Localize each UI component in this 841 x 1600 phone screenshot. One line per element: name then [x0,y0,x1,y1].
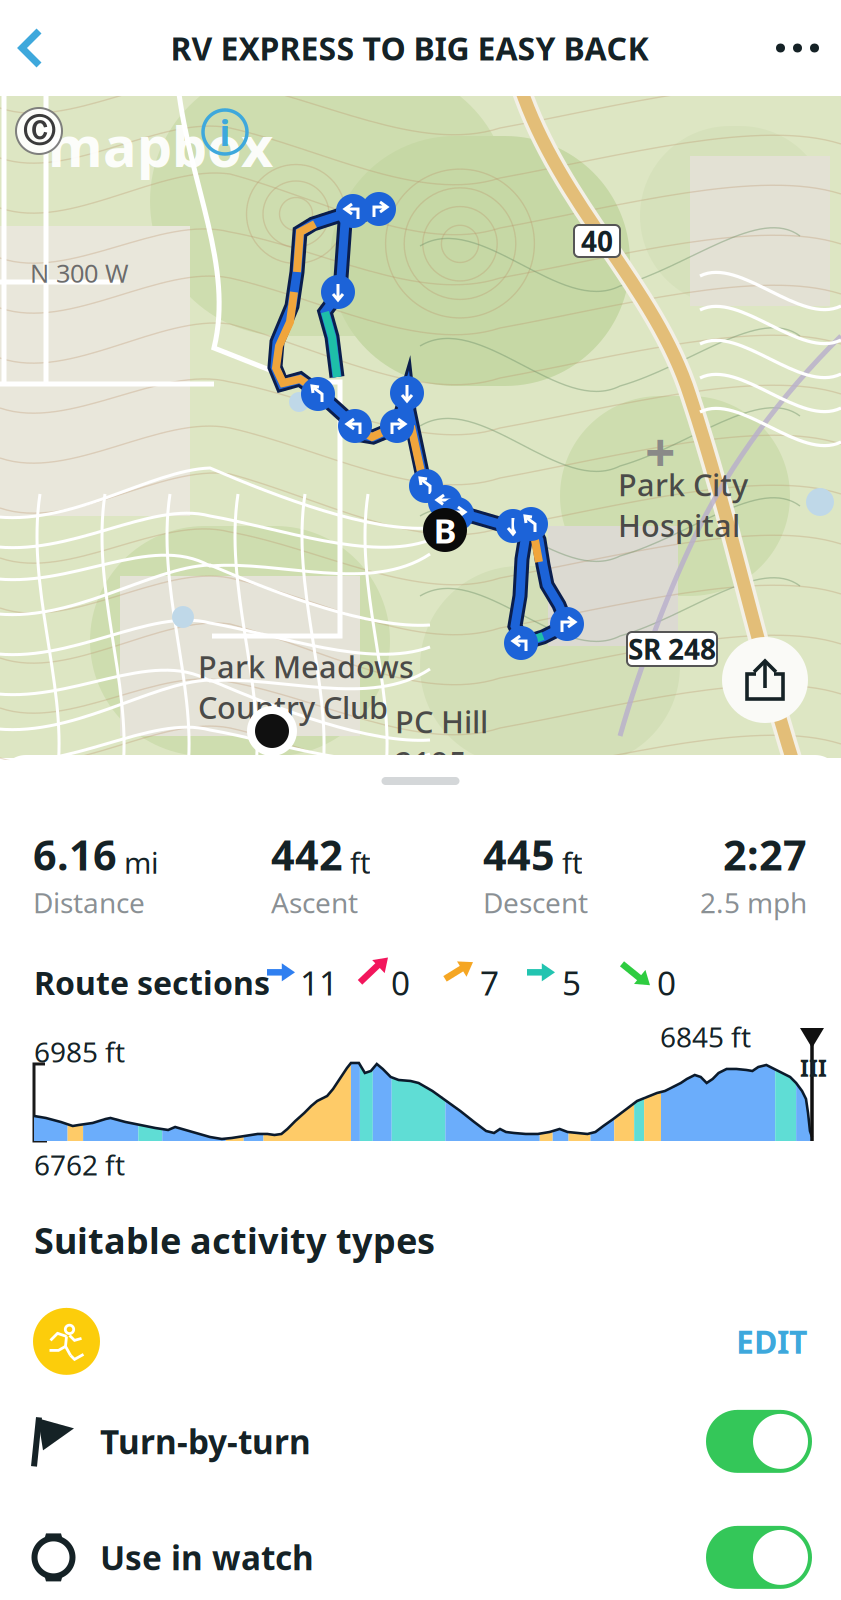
staticText: 6985 ft [34,1033,125,1070]
staticText: Park Meadows Country Club [198,646,414,727]
staticText: Park City Hospital [618,464,748,545]
button[interactable]: Share [722,637,808,723]
staticText: 6762 ft [34,1146,125,1183]
button[interactable]: Running [33,1308,100,1375]
button[interactable]: Turn-by-turn [0,1410,841,1473]
staticText: N 300 W [30,256,129,290]
staticText: 5 [562,960,581,1005]
button[interactable]: Map attribution info [203,110,247,154]
staticText: 11 [300,960,338,1005]
staticText: PC Hill 2195 m [395,701,504,782]
staticText: EDIT [736,1320,807,1363]
staticText: RV EXPRESS TO BIG EASY BACK [170,27,648,69]
staticText: 6845 ft [660,1018,751,1055]
staticText: 6.16 [33,827,117,882]
staticText: Descent [483,884,588,921]
button[interactable]: EDIT [736,1320,807,1363]
staticText: 0 [391,960,410,1005]
staticText: 40 [581,222,613,260]
staticText: Ascent [271,884,358,921]
staticText: + [645,416,676,487]
staticText: 442 [271,827,343,882]
button[interactable]: Use in watch [0,1526,841,1589]
staticText: mi [124,843,159,882]
staticText: Route sections [34,961,270,1004]
staticText: 0 [657,960,676,1005]
staticText: B [433,507,456,553]
staticText: III [800,1053,827,1083]
button[interactable]: More options [760,0,841,96]
staticText: ft [562,843,583,882]
staticText: ft [350,843,371,882]
staticText: mapbox [48,108,273,182]
staticText: i [219,108,230,156]
staticText: 2:27 [723,827,807,882]
staticText: 7 [480,960,499,1005]
staticText: SR 248 [628,630,716,668]
staticText: Use in watch [100,1535,314,1579]
staticText: Suitable activity types [34,1216,435,1264]
staticText: Turn-by-turn [100,1419,311,1463]
staticText: 2.5 mph [700,884,807,921]
staticText: Distance [33,884,145,921]
staticText: 445 [483,827,555,882]
button[interactable]: Back [0,0,59,96]
staticText: Ⓒ [23,111,55,151]
